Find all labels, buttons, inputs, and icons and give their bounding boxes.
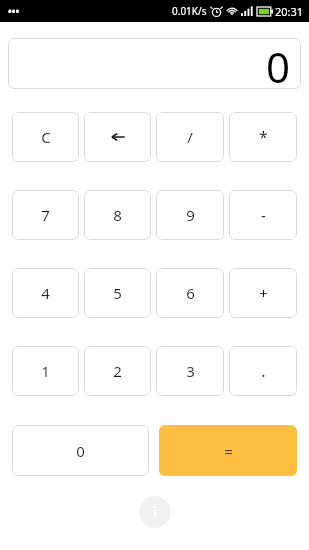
staticText: - bbox=[261, 205, 266, 225]
staticText: . bbox=[261, 360, 266, 382]
button[interactable]: 7 bbox=[12, 190, 79, 240]
staticText: 4 bbox=[41, 283, 50, 303]
staticText: 1 bbox=[41, 361, 50, 381]
button[interactable]: = bbox=[159, 425, 297, 476]
button[interactable]: . bbox=[229, 346, 297, 396]
staticText: / bbox=[187, 127, 193, 147]
staticText: 20:31 bbox=[275, 4, 304, 19]
staticText: 9 bbox=[186, 205, 195, 225]
button[interactable]: 0 bbox=[12, 425, 149, 476]
button[interactable]: 6 bbox=[156, 268, 224, 318]
button[interactable]: 4 bbox=[12, 268, 79, 318]
staticText: 0 bbox=[266, 38, 291, 89]
button[interactable]: Info bbox=[139, 496, 171, 528]
button[interactable]: 2 bbox=[84, 346, 151, 396]
staticText: 6 bbox=[186, 283, 195, 303]
button[interactable]: Backspace bbox=[84, 112, 151, 162]
button[interactable]: / bbox=[156, 112, 224, 162]
button[interactable]: C bbox=[12, 112, 79, 162]
staticText: 0 bbox=[76, 441, 85, 461]
staticText: 2 bbox=[113, 361, 122, 381]
staticText: 8 bbox=[113, 205, 122, 225]
staticText: + bbox=[259, 283, 268, 303]
staticText: 0.01K/s bbox=[172, 4, 207, 18]
button[interactable]: - bbox=[229, 190, 297, 240]
staticText: ••• bbox=[8, 4, 20, 18]
staticText: = bbox=[224, 441, 233, 461]
button[interactable]: + bbox=[229, 268, 297, 318]
button[interactable]: 5 bbox=[84, 268, 151, 318]
button[interactable]: * bbox=[229, 112, 297, 162]
button[interactable]: 1 bbox=[12, 346, 79, 396]
button[interactable]: 8 bbox=[84, 190, 151, 240]
button[interactable]: 0 bbox=[8, 38, 301, 89]
staticText: * bbox=[259, 126, 268, 148]
button[interactable]: 3 bbox=[156, 346, 224, 396]
staticText: 7 bbox=[41, 205, 50, 225]
staticText: C bbox=[41, 127, 51, 147]
staticText: 5 bbox=[113, 283, 122, 303]
staticText: 3 bbox=[186, 361, 195, 381]
button[interactable]: 9 bbox=[156, 190, 224, 240]
